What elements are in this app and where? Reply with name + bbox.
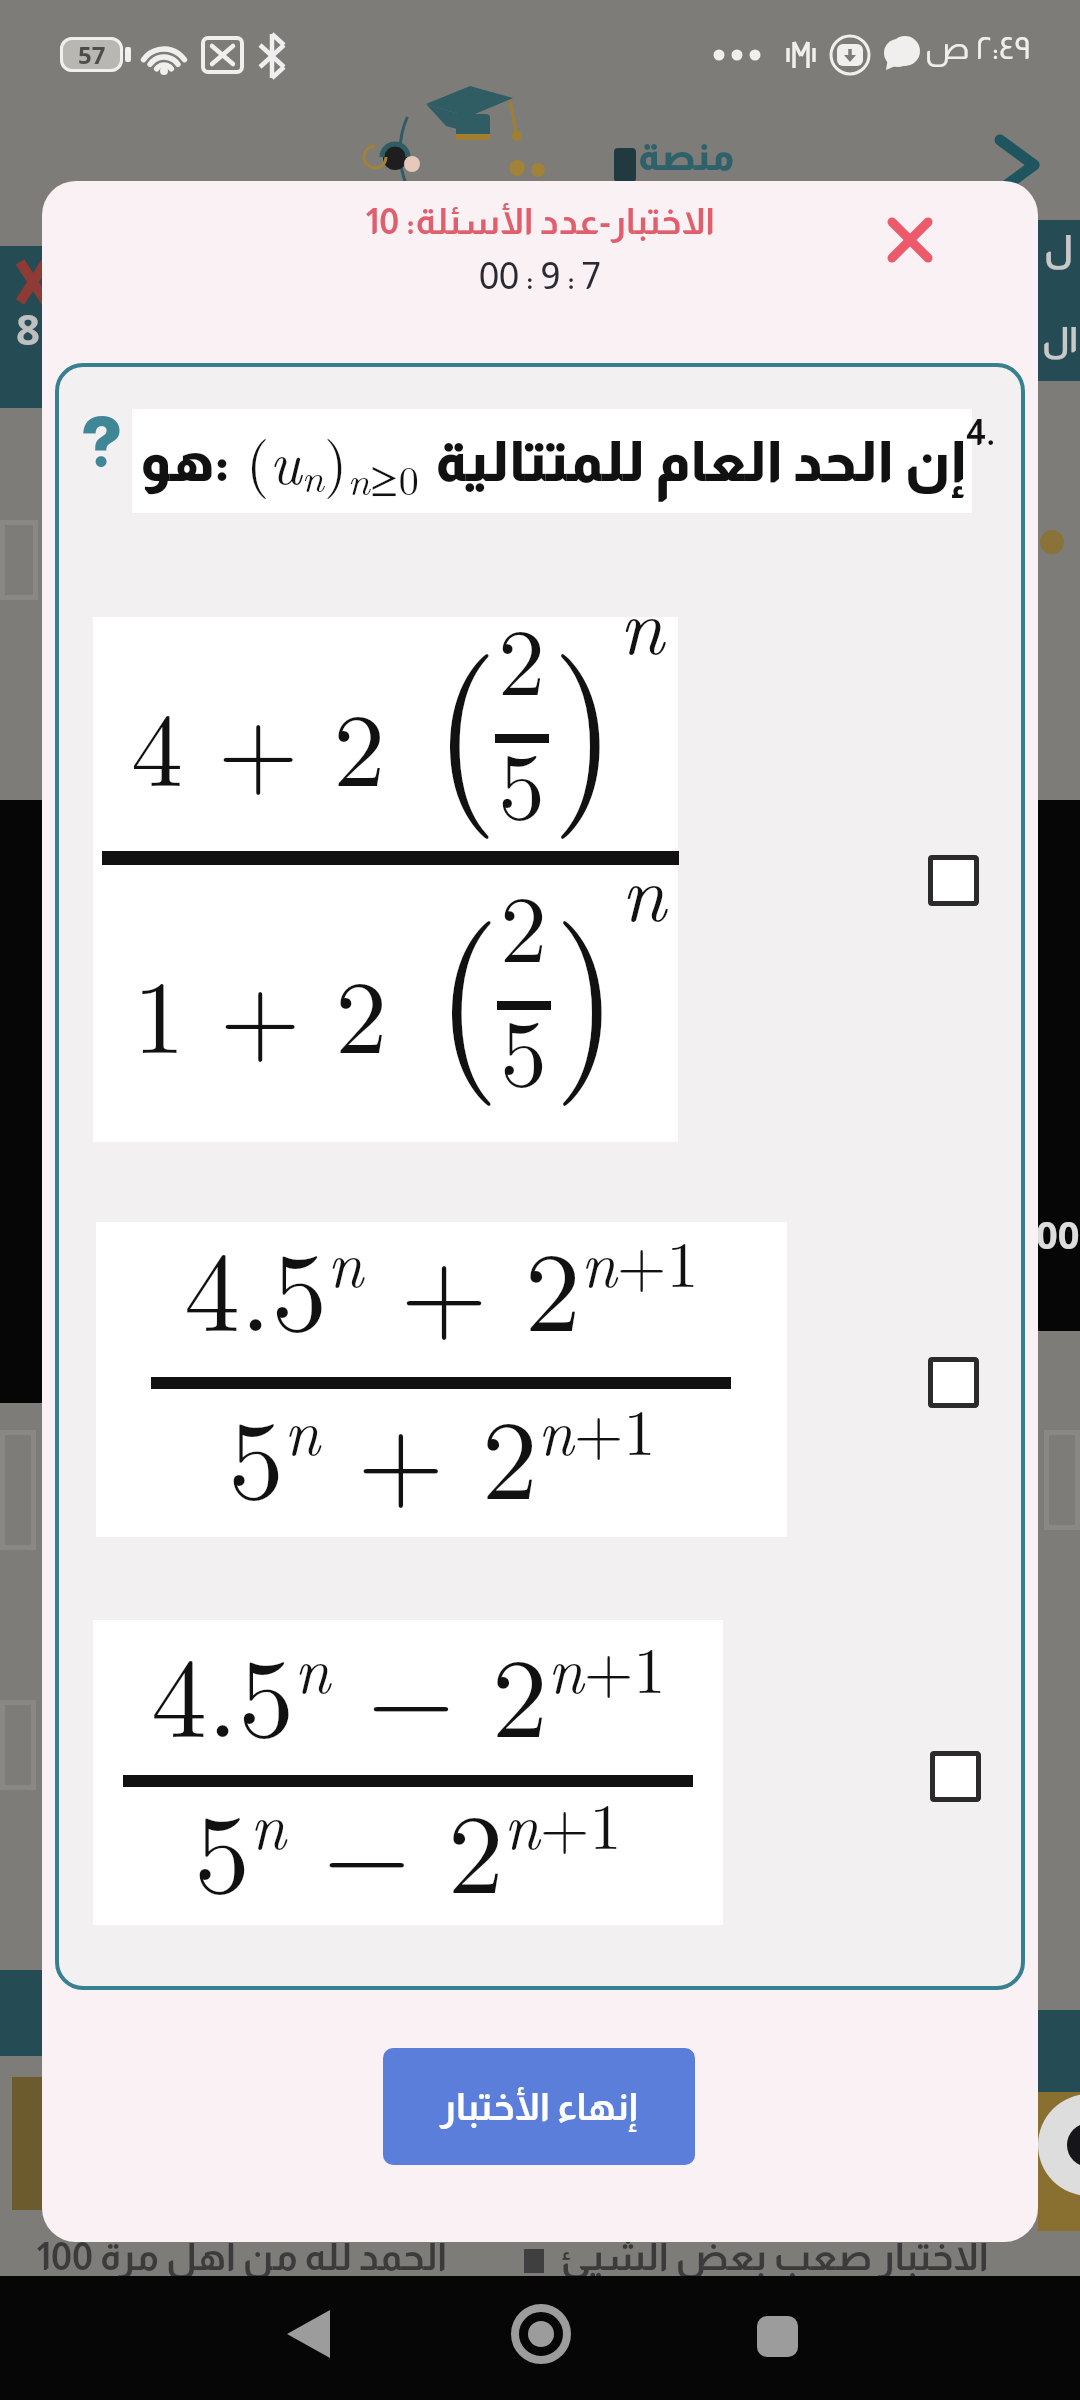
button[interactable] bbox=[928, 1357, 979, 1408]
button[interactable] bbox=[878, 208, 942, 272]
staticText: n bbox=[619, 564, 664, 677]
staticText: ( bbox=[435, 851, 500, 1114]
staticText: n bbox=[621, 831, 666, 944]
staticText: ال bbox=[1042, 320, 1079, 358]
button[interactable] bbox=[491, 2284, 591, 2384]
button[interactable]: 4.5n + 2n+1 bbox=[96, 1222, 787, 1537]
staticText: ? bbox=[80, 404, 123, 482]
staticText: 4. bbox=[966, 412, 996, 453]
button[interactable]: إنهاء الأختبار bbox=[383, 2048, 695, 2165]
staticText: إنهاء الأختبار bbox=[440, 2086, 638, 2128]
staticText: 57 bbox=[78, 38, 106, 71]
staticText: ) bbox=[551, 584, 616, 847]
button[interactable] bbox=[260, 2295, 360, 2375]
staticText: ( bbox=[433, 584, 498, 847]
staticText: 00 : 9 : 7 bbox=[479, 255, 601, 297]
button[interactable] bbox=[727, 2286, 827, 2386]
staticText: الاختبار صعب بعض الشيئ bbox=[560, 2236, 989, 2278]
staticText: إن الحد العام للمتتالية bbox=[435, 430, 966, 492]
staticText: 1 + 2 bbox=[133, 936, 388, 1083]
staticText: 5n + 2n+1 bbox=[228, 1373, 656, 1532]
staticText: 5 bbox=[500, 980, 548, 1113]
staticText: 2 bbox=[498, 589, 546, 722]
staticText: 5 bbox=[498, 713, 546, 846]
staticText: 2 bbox=[500, 856, 548, 989]
staticText: 4 + 2 bbox=[131, 669, 386, 816]
staticText: الحمد لله من اهل مرة 100 bbox=[36, 2236, 448, 2278]
staticText: ) bbox=[553, 851, 618, 1114]
staticText: (un)n≥0 bbox=[246, 416, 419, 506]
staticText: هو: bbox=[140, 430, 230, 492]
button[interactable] bbox=[928, 855, 979, 906]
staticText: 5n − 2n+1 bbox=[194, 1767, 622, 1926]
button[interactable] bbox=[930, 1751, 981, 1802]
staticText: 00 bbox=[1036, 1208, 1080, 1260]
staticText: ل bbox=[1044, 228, 1073, 268]
button[interactable]: 4 + 2 bbox=[93, 617, 678, 1142]
staticText: 4.5n + 2n+1 bbox=[184, 1205, 699, 1364]
staticText: منصة bbox=[638, 136, 735, 178]
staticText: الاختبار-عدد الأسئلة: 10 bbox=[365, 201, 715, 241]
staticText: 4.5n − 2n+1 bbox=[151, 1611, 666, 1770]
button[interactable]: 4.5n − 2n+1 bbox=[93, 1620, 723, 1925]
staticText: 8 bbox=[16, 300, 41, 357]
staticText: ٢:٤٩ ص bbox=[925, 30, 1031, 66]
